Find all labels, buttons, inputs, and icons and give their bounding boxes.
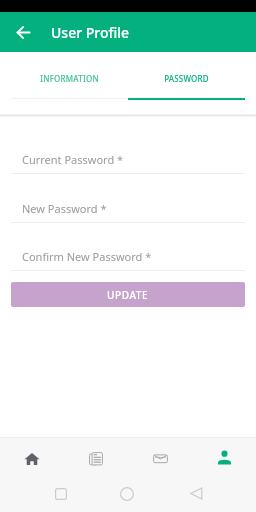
staticText: INFORMATION bbox=[40, 73, 99, 84]
button[interactable]: New Password * bbox=[11, 198, 245, 223]
button[interactable]: Profile bbox=[192, 438, 256, 479]
button[interactable]: Back bbox=[190, 487, 203, 500]
button[interactable]: UPDATE bbox=[11, 282, 245, 307]
button[interactable]: Back bbox=[11, 20, 35, 44]
button[interactable]: Confirm New Password * bbox=[11, 246, 245, 271]
staticText: Current Password * bbox=[22, 152, 124, 167]
button[interactable]: PASSWORD bbox=[128, 52, 245, 102]
staticText: New Password * bbox=[22, 201, 107, 216]
button[interactable]: INFORMATION bbox=[11, 52, 128, 102]
staticText: UPDATE bbox=[107, 288, 149, 302]
button[interactable]: Recents bbox=[55, 488, 67, 500]
staticText: PASSWORD bbox=[164, 73, 209, 84]
button[interactable]: Home bbox=[120, 487, 134, 501]
button[interactable]: Mail bbox=[128, 438, 192, 479]
staticText: User Profile bbox=[51, 23, 130, 42]
button[interactable]: Documents bbox=[64, 438, 128, 479]
button[interactable]: Home bbox=[0, 438, 64, 479]
staticText: Confirm New Password * bbox=[22, 249, 152, 264]
button[interactable]: Current Password * bbox=[11, 149, 245, 174]
